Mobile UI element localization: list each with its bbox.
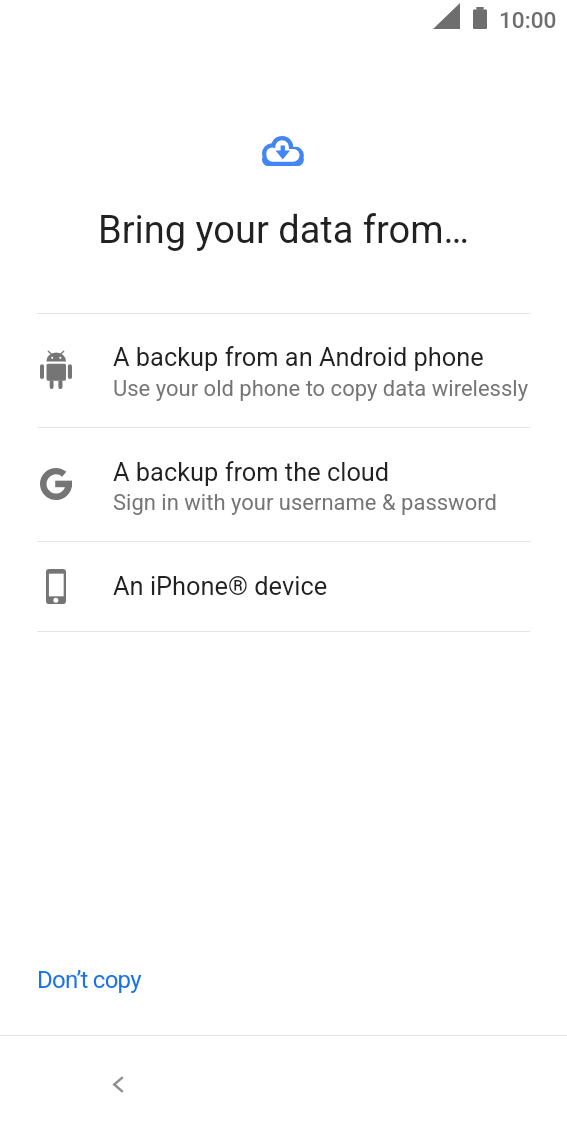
staticText: 10:00 — [499, 7, 557, 33]
button[interactable]: A backup from the cloud — [0, 427, 567, 541]
staticText: Sign in with your username & password — [113, 490, 497, 516]
button[interactable]: Back — [94, 1060, 142, 1108]
staticText: Bring your data from… — [0, 208, 567, 253]
staticText: Use your old phone to copy data wireless… — [113, 376, 529, 402]
button[interactable]: A backup from an Android phone — [0, 313, 567, 427]
staticText: A backup from an Android phone — [113, 342, 484, 372]
button[interactable]: Don’t copy — [29, 960, 149, 1000]
staticText: Don’t copy — [37, 966, 141, 994]
staticText: An iPhone® device — [113, 571, 328, 601]
staticText: A backup from the cloud — [113, 457, 390, 487]
button[interactable]: An iPhone® device — [0, 541, 567, 631]
